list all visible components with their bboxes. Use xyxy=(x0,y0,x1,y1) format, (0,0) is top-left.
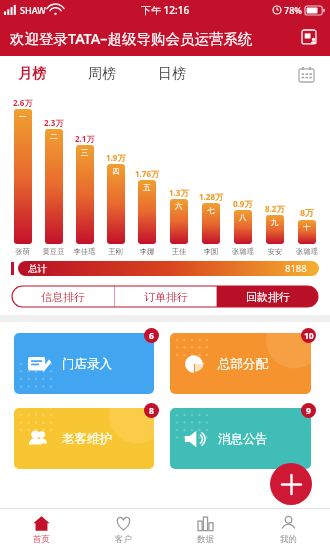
staticText: 下午 12:16 xyxy=(141,3,190,17)
staticText: 回款排行 xyxy=(246,290,290,304)
button[interactable]: 数据 xyxy=(164,509,247,550)
staticText: 张璐瑶 xyxy=(291,247,323,256)
button[interactable]: 八 xyxy=(234,210,252,244)
button[interactable]: 门店录入 xyxy=(14,333,154,394)
staticText: 月榜 xyxy=(18,65,46,83)
button[interactable]: 信息排行 xyxy=(12,286,114,307)
staticText: 五 xyxy=(143,183,151,192)
button[interactable]: 四 xyxy=(107,164,125,244)
staticText: 我的 xyxy=(280,534,297,545)
staticText: 三 xyxy=(81,148,89,157)
staticText: 6 xyxy=(149,330,154,342)
button[interactable]: 我的 xyxy=(247,509,330,550)
staticText: 十 xyxy=(303,223,311,232)
staticText: 张璐瑶 xyxy=(227,247,259,256)
staticText: 王佳 xyxy=(163,247,195,256)
staticText: 2.3万 xyxy=(44,117,64,128)
staticText: 1.9万 xyxy=(106,152,126,163)
staticText: 李佳瑶 xyxy=(69,247,100,256)
staticText: 8万 xyxy=(300,207,314,219)
button[interactable]: 首页 xyxy=(0,509,82,550)
staticText: 1.76万 xyxy=(135,168,159,179)
button[interactable]: 总部分配 xyxy=(170,333,311,394)
button[interactable]: 周榜 xyxy=(86,65,118,83)
staticText: 王刚 xyxy=(100,247,131,256)
button[interactable]: 日榜 xyxy=(156,65,188,83)
staticText: 总部分配 xyxy=(218,356,268,372)
staticText: 1.28万 xyxy=(199,191,223,202)
staticText: 六 xyxy=(175,202,183,211)
staticText: 信息排行 xyxy=(41,290,85,304)
button[interactable]: 九 xyxy=(266,215,284,244)
button[interactable]: Calendar xyxy=(294,62,318,86)
staticText: 0.9万 xyxy=(233,198,253,209)
staticText: 9 xyxy=(306,405,311,417)
button[interactable]: 总计 xyxy=(18,261,319,276)
staticText: 2.1万 xyxy=(75,133,95,144)
staticText: 李圆 xyxy=(195,247,227,256)
button[interactable]: 六 xyxy=(170,199,188,244)
button[interactable]: 老客维护 xyxy=(14,408,154,469)
staticText: 8 xyxy=(149,405,154,417)
button[interactable]: 订单排行 xyxy=(115,286,216,307)
staticText: 门店录入 xyxy=(62,356,112,372)
staticText: 消息公告 xyxy=(218,431,268,447)
button[interactable]: 七 xyxy=(202,203,220,244)
button[interactable]: Add xyxy=(270,463,312,505)
staticText: 二 xyxy=(50,132,58,141)
staticText: 欢迎登录TATA–超级导购会员运营系统 xyxy=(10,28,253,48)
staticText: 四 xyxy=(112,167,120,176)
button[interactable]: 一 xyxy=(14,109,32,244)
staticText: 客户 xyxy=(115,534,132,545)
staticText: 九 xyxy=(271,218,279,227)
staticText: 七 xyxy=(207,206,215,215)
staticText: 一 xyxy=(19,112,27,121)
staticText: 78% xyxy=(284,4,302,16)
staticText: 1.3万 xyxy=(169,187,189,198)
staticText: 订单排行 xyxy=(144,290,188,304)
button[interactable]: 十 xyxy=(298,220,316,244)
staticText: 日榜 xyxy=(158,65,186,83)
button[interactable]: 三 xyxy=(76,145,94,244)
staticText: 总计 xyxy=(28,263,47,275)
staticText: SHAW xyxy=(20,4,46,16)
staticText: 安安 xyxy=(259,247,291,256)
staticText: 八 xyxy=(239,213,247,222)
staticText: 数据 xyxy=(197,534,214,545)
staticText: 周榜 xyxy=(88,65,116,83)
staticText: 2.6万 xyxy=(13,97,33,108)
button[interactable]: Account xyxy=(298,26,322,50)
staticText: 老客维护 xyxy=(62,431,112,447)
button[interactable]: 五 xyxy=(138,180,156,244)
staticText: 首页 xyxy=(33,534,50,545)
button[interactable]: 客户 xyxy=(82,509,164,550)
button[interactable]: 消息公告 xyxy=(170,408,311,469)
staticText: 8188 xyxy=(285,262,307,275)
staticText: 李娜 xyxy=(131,247,163,256)
staticText: 8.2万 xyxy=(265,203,285,214)
button[interactable]: 二 xyxy=(45,129,63,244)
button[interactable]: 回款排行 xyxy=(217,286,318,307)
staticText: 10 xyxy=(304,330,314,342)
staticText: 张萌 xyxy=(7,247,38,256)
staticText: 黄豆豆 xyxy=(38,247,69,256)
button[interactable]: 月榜 xyxy=(16,65,48,83)
